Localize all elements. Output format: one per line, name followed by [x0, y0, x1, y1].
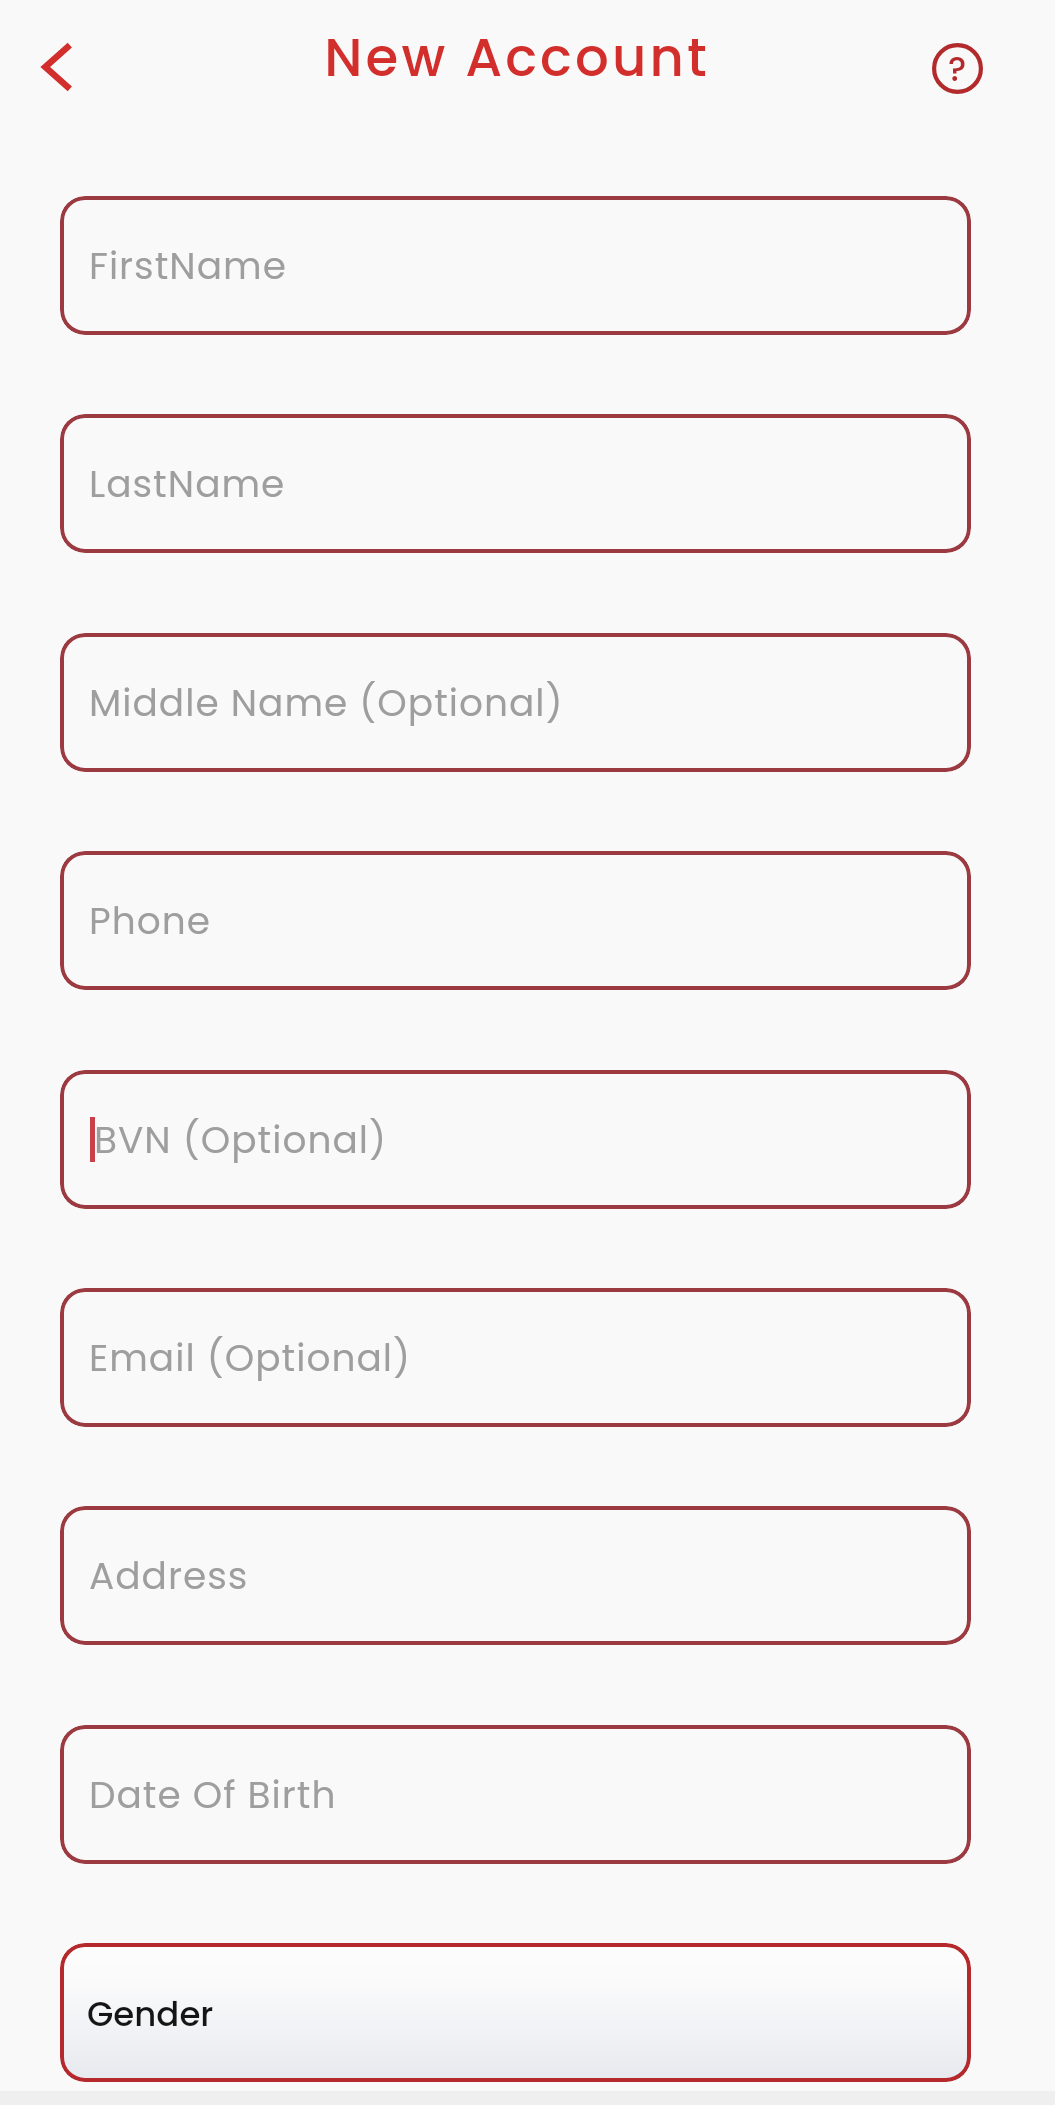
button[interactable]: Back	[12, 22, 102, 112]
button[interactable]: Help	[912, 23, 1002, 113]
button[interactable]: Address	[60, 1506, 971, 1645]
staticText: Address	[89, 1550, 249, 1603]
staticText: Date Of Birth	[89, 1769, 337, 1822]
staticText: Phone	[89, 895, 211, 948]
button[interactable]: Email (Optional)	[60, 1288, 971, 1427]
staticText: LastName	[89, 458, 286, 511]
button[interactable]: Date Of Birth	[60, 1725, 971, 1864]
button[interactable]: Phone	[60, 851, 971, 990]
staticText: Gender	[87, 1990, 214, 2038]
button[interactable]: LastName	[60, 414, 971, 553]
button[interactable]: BVN (Optional)	[60, 1070, 971, 1209]
staticText: ?	[948, 45, 967, 93]
button[interactable]: FirstName	[60, 196, 971, 335]
staticText: BVN (Optional)	[94, 1114, 388, 1167]
staticText: FirstName	[89, 240, 287, 293]
staticText: New Account	[324, 20, 710, 94]
button[interactable]: Middle Name (Optional)	[60, 633, 971, 772]
button[interactable]: Gender	[60, 1943, 971, 2082]
staticText: Email (Optional)	[89, 1332, 411, 1385]
staticText: Middle Name (Optional)	[89, 677, 564, 730]
